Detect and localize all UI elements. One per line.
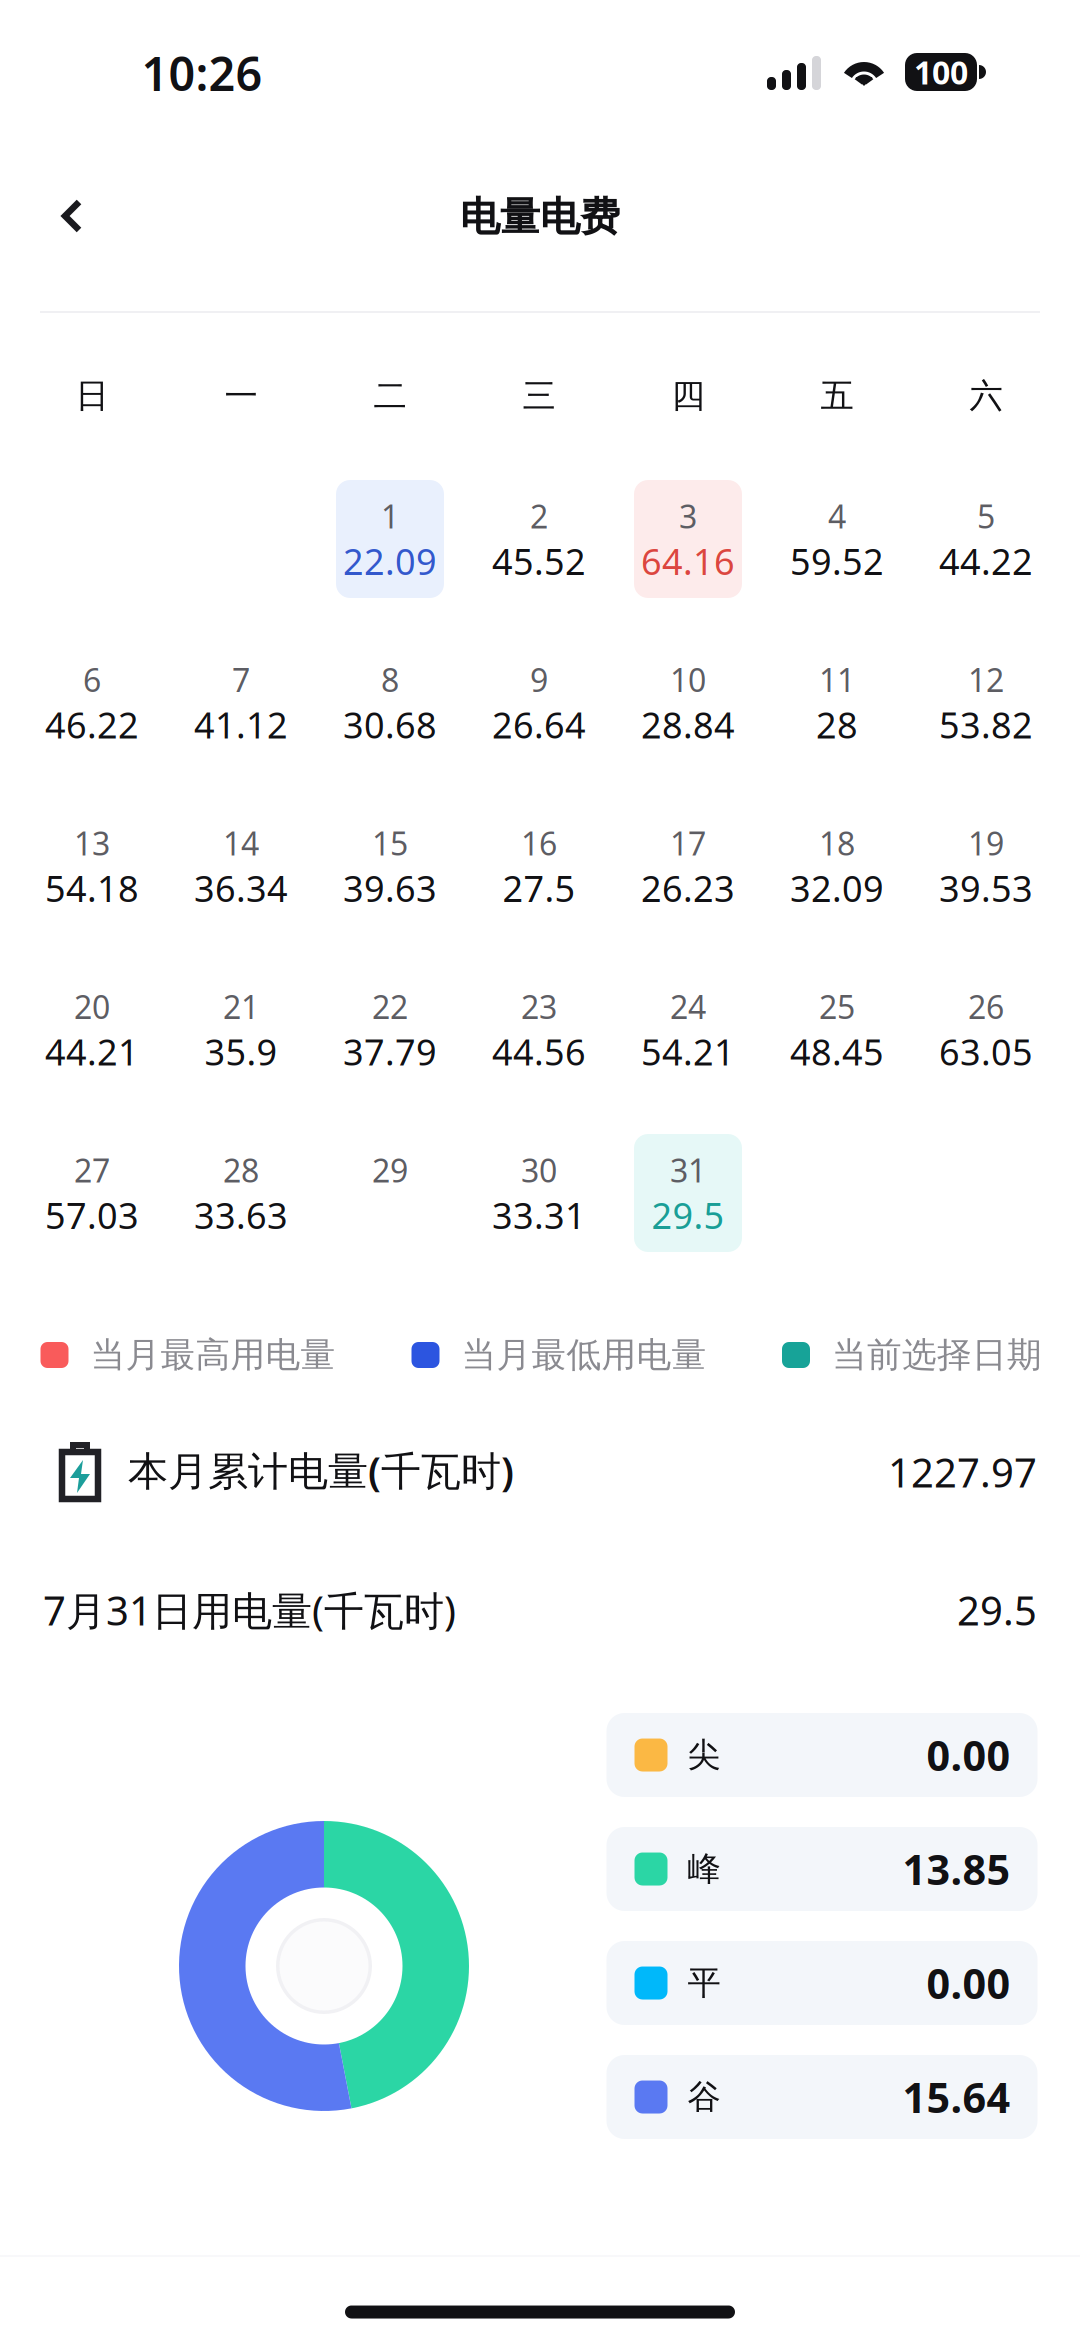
button[interactable]: 21 — [166, 962, 315, 1096]
staticText: 57.03 — [45, 1191, 139, 1239]
button[interactable]: 22 — [315, 962, 464, 1096]
staticText: 54.21 — [641, 1028, 735, 1075]
staticText: 39.63 — [343, 864, 437, 912]
staticText: 三 — [522, 375, 555, 416]
button[interactable]: 27 — [17, 1126, 166, 1260]
staticText: 27.5 — [502, 864, 575, 912]
staticText: 3 — [679, 495, 697, 537]
staticText: 33.63 — [194, 1191, 288, 1239]
button[interactable]: 14 — [166, 799, 315, 933]
staticText: 28 — [223, 1149, 259, 1191]
button[interactable]: 1 — [315, 472, 464, 606]
button[interactable]: 30 — [464, 1126, 613, 1260]
staticText: 10 — [670, 658, 706, 701]
staticText: 39.53 — [939, 864, 1033, 912]
button[interactable]: 3 — [613, 472, 762, 606]
button[interactable]: 10 — [613, 635, 762, 769]
button[interactable]: 31 — [613, 1126, 762, 1260]
staticText: 29.5 — [957, 1583, 1037, 1636]
button[interactable]: 26 — [911, 962, 1060, 1096]
button[interactable]: 返回 — [20, 165, 124, 267]
staticText: 28.84 — [641, 701, 735, 748]
button[interactable]: 24 — [613, 962, 762, 1096]
staticText: 15 — [372, 822, 408, 864]
button[interactable]: 7 — [166, 635, 315, 769]
staticText: 当前选择日期 — [832, 1334, 1042, 1376]
staticText: 六 — [969, 375, 1002, 416]
staticText: 日 — [75, 375, 108, 416]
staticText: 27 — [74, 1149, 110, 1191]
staticText: 6 — [83, 658, 101, 701]
button[interactable]: 20 — [17, 962, 166, 1096]
staticText: 0.00 — [926, 1728, 1010, 1782]
staticText: 13 — [74, 822, 110, 864]
staticText: 100 — [914, 51, 968, 93]
staticText: 26 — [968, 985, 1004, 1028]
staticText: 5 — [977, 495, 995, 537]
staticText: 8 — [381, 658, 399, 701]
button[interactable]: 25 — [762, 962, 911, 1096]
staticText: 0.00 — [926, 1956, 1010, 2010]
staticText: 22.09 — [343, 537, 437, 585]
staticText: 44.56 — [492, 1028, 586, 1075]
button[interactable]: 16 — [464, 799, 613, 933]
staticText: 53.82 — [939, 701, 1033, 748]
staticText: 19 — [968, 822, 1004, 864]
staticText: 36.34 — [194, 864, 288, 912]
staticText: 35.9 — [204, 1028, 277, 1075]
staticText: 峰 — [687, 1848, 720, 1889]
staticText: 10:26 — [141, 42, 262, 104]
button[interactable]: 17 — [613, 799, 762, 933]
staticText: 16 — [521, 822, 557, 864]
staticText: 7 — [232, 658, 250, 701]
staticText: 一 — [224, 375, 257, 416]
staticText: 26.23 — [641, 864, 735, 912]
staticText: 12 — [968, 658, 1004, 701]
button[interactable]: 平 — [606, 1941, 1037, 2025]
staticText: 25 — [819, 985, 855, 1028]
staticText: 尖 — [687, 1734, 720, 1775]
staticText: 15.64 — [902, 2070, 1010, 2124]
staticText: 五 — [820, 375, 853, 416]
staticText: 14 — [223, 822, 259, 864]
button[interactable]: 18 — [762, 799, 911, 933]
staticText: 32.09 — [790, 864, 884, 912]
button[interactable]: 9 — [464, 635, 613, 769]
staticText: 11 — [819, 658, 855, 701]
button[interactable]: 19 — [911, 799, 1060, 933]
staticText: 44.22 — [939, 537, 1033, 585]
staticText: 9 — [530, 658, 548, 701]
button[interactable]: 峰 — [606, 1827, 1037, 1911]
staticText: 64.16 — [641, 537, 735, 585]
staticText: 29.5 — [651, 1191, 724, 1239]
button[interactable]: 28 — [166, 1126, 315, 1260]
button[interactable]: 尖 — [606, 1713, 1037, 1797]
button[interactable]: 15 — [315, 799, 464, 933]
button[interactable]: 23 — [464, 962, 613, 1096]
staticText: 四 — [671, 375, 704, 416]
button[interactable]: 5 — [911, 472, 1060, 606]
button[interactable]: 2 — [464, 472, 613, 606]
staticText: 45.52 — [492, 537, 586, 585]
button[interactable]: 8 — [315, 635, 464, 769]
button[interactable]: 29 — [315, 1126, 464, 1260]
staticText: 31 — [670, 1149, 706, 1191]
button[interactable]: 12 — [911, 635, 1060, 769]
button[interactable]: 11 — [762, 635, 911, 769]
staticText: 18 — [819, 822, 855, 864]
button[interactable]: 4 — [762, 472, 911, 606]
staticText: 二 — [373, 375, 406, 416]
button[interactable]: 13 — [17, 799, 166, 933]
button[interactable]: 谷 — [606, 2055, 1037, 2139]
staticText: 2 — [530, 495, 548, 537]
staticText: 平 — [687, 1962, 720, 2003]
staticText: 37.79 — [343, 1028, 437, 1075]
staticText: 54.18 — [45, 864, 139, 912]
staticText: 21 — [223, 985, 259, 1028]
staticText: 44.21 — [45, 1028, 139, 1075]
staticText: 26.64 — [492, 701, 586, 748]
staticText: 当月最低用电量 — [461, 1334, 706, 1376]
button[interactable]: 6 — [17, 635, 166, 769]
staticText: 电量电费 — [460, 192, 620, 241]
staticText: 48.45 — [790, 1028, 884, 1075]
